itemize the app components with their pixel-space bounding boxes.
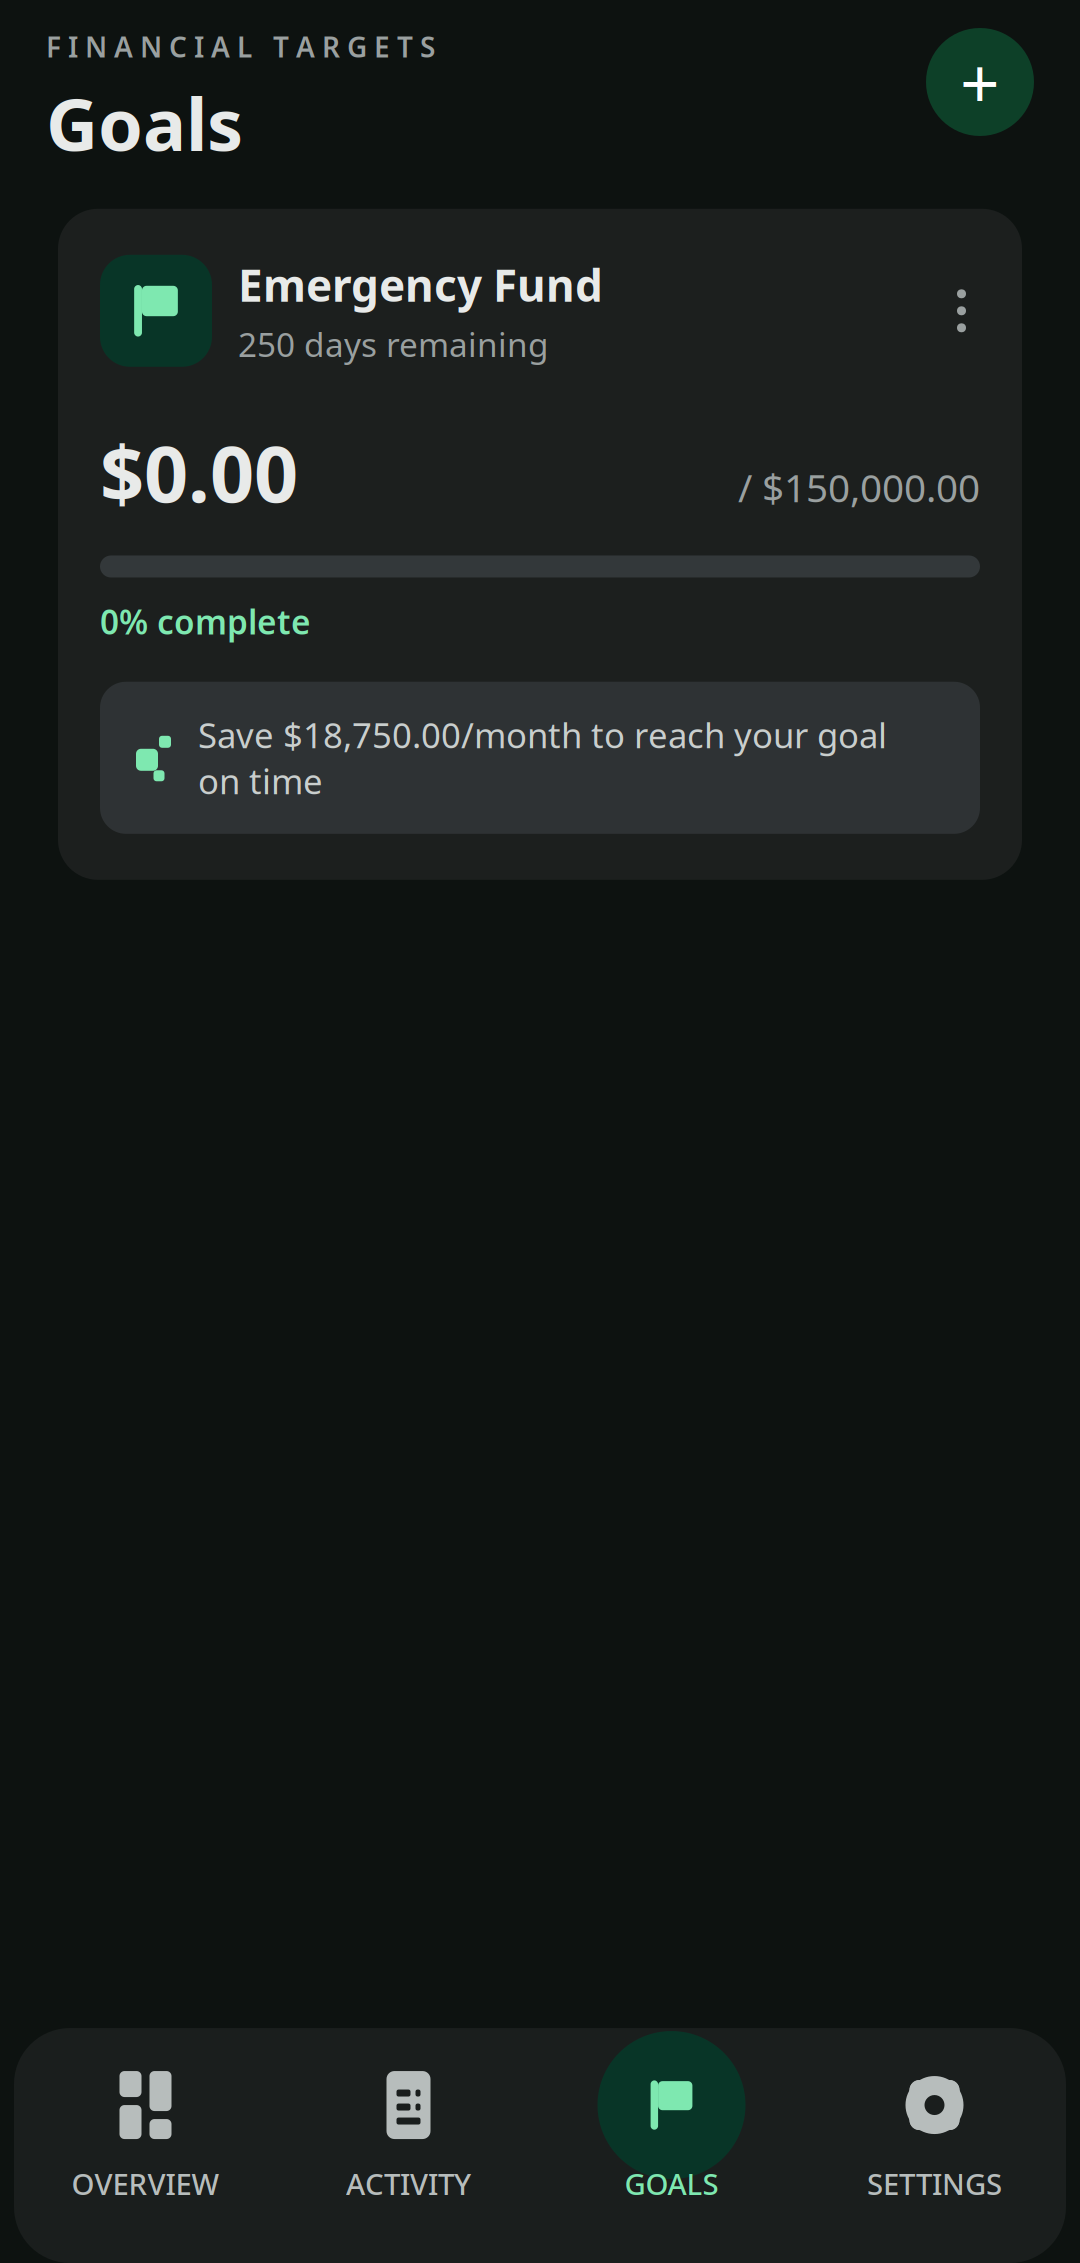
staticText: / $150,000.00 xyxy=(738,461,980,513)
button[interactable]: ACTIVITY xyxy=(277,2062,540,2203)
staticText: F I N A N C I A L T A R G E T S xyxy=(46,28,435,65)
staticText: GOALS xyxy=(624,2164,718,2203)
staticText: SETTINGS xyxy=(867,2164,1002,2203)
staticText: $0.00 xyxy=(100,421,298,523)
staticText: ACTIVITY xyxy=(346,2164,471,2203)
button[interactable]: OVERVIEW xyxy=(14,2062,277,2203)
staticText: 250 days remaining xyxy=(238,322,549,366)
staticText: Goals xyxy=(46,75,243,171)
button[interactable]: Add goal xyxy=(926,28,1034,136)
button[interactable]: GOALS xyxy=(540,2062,803,2203)
button[interactable]: More options xyxy=(943,275,980,346)
staticText: Emergency Fund xyxy=(238,255,603,314)
staticText: + xyxy=(960,36,1000,128)
staticText: Save $18,750.00/month to reach your goal… xyxy=(198,712,887,804)
staticText: OVERVIEW xyxy=(71,2164,219,2203)
button[interactable]: SETTINGS xyxy=(803,2062,1066,2203)
staticText: 0% complete xyxy=(100,599,311,644)
